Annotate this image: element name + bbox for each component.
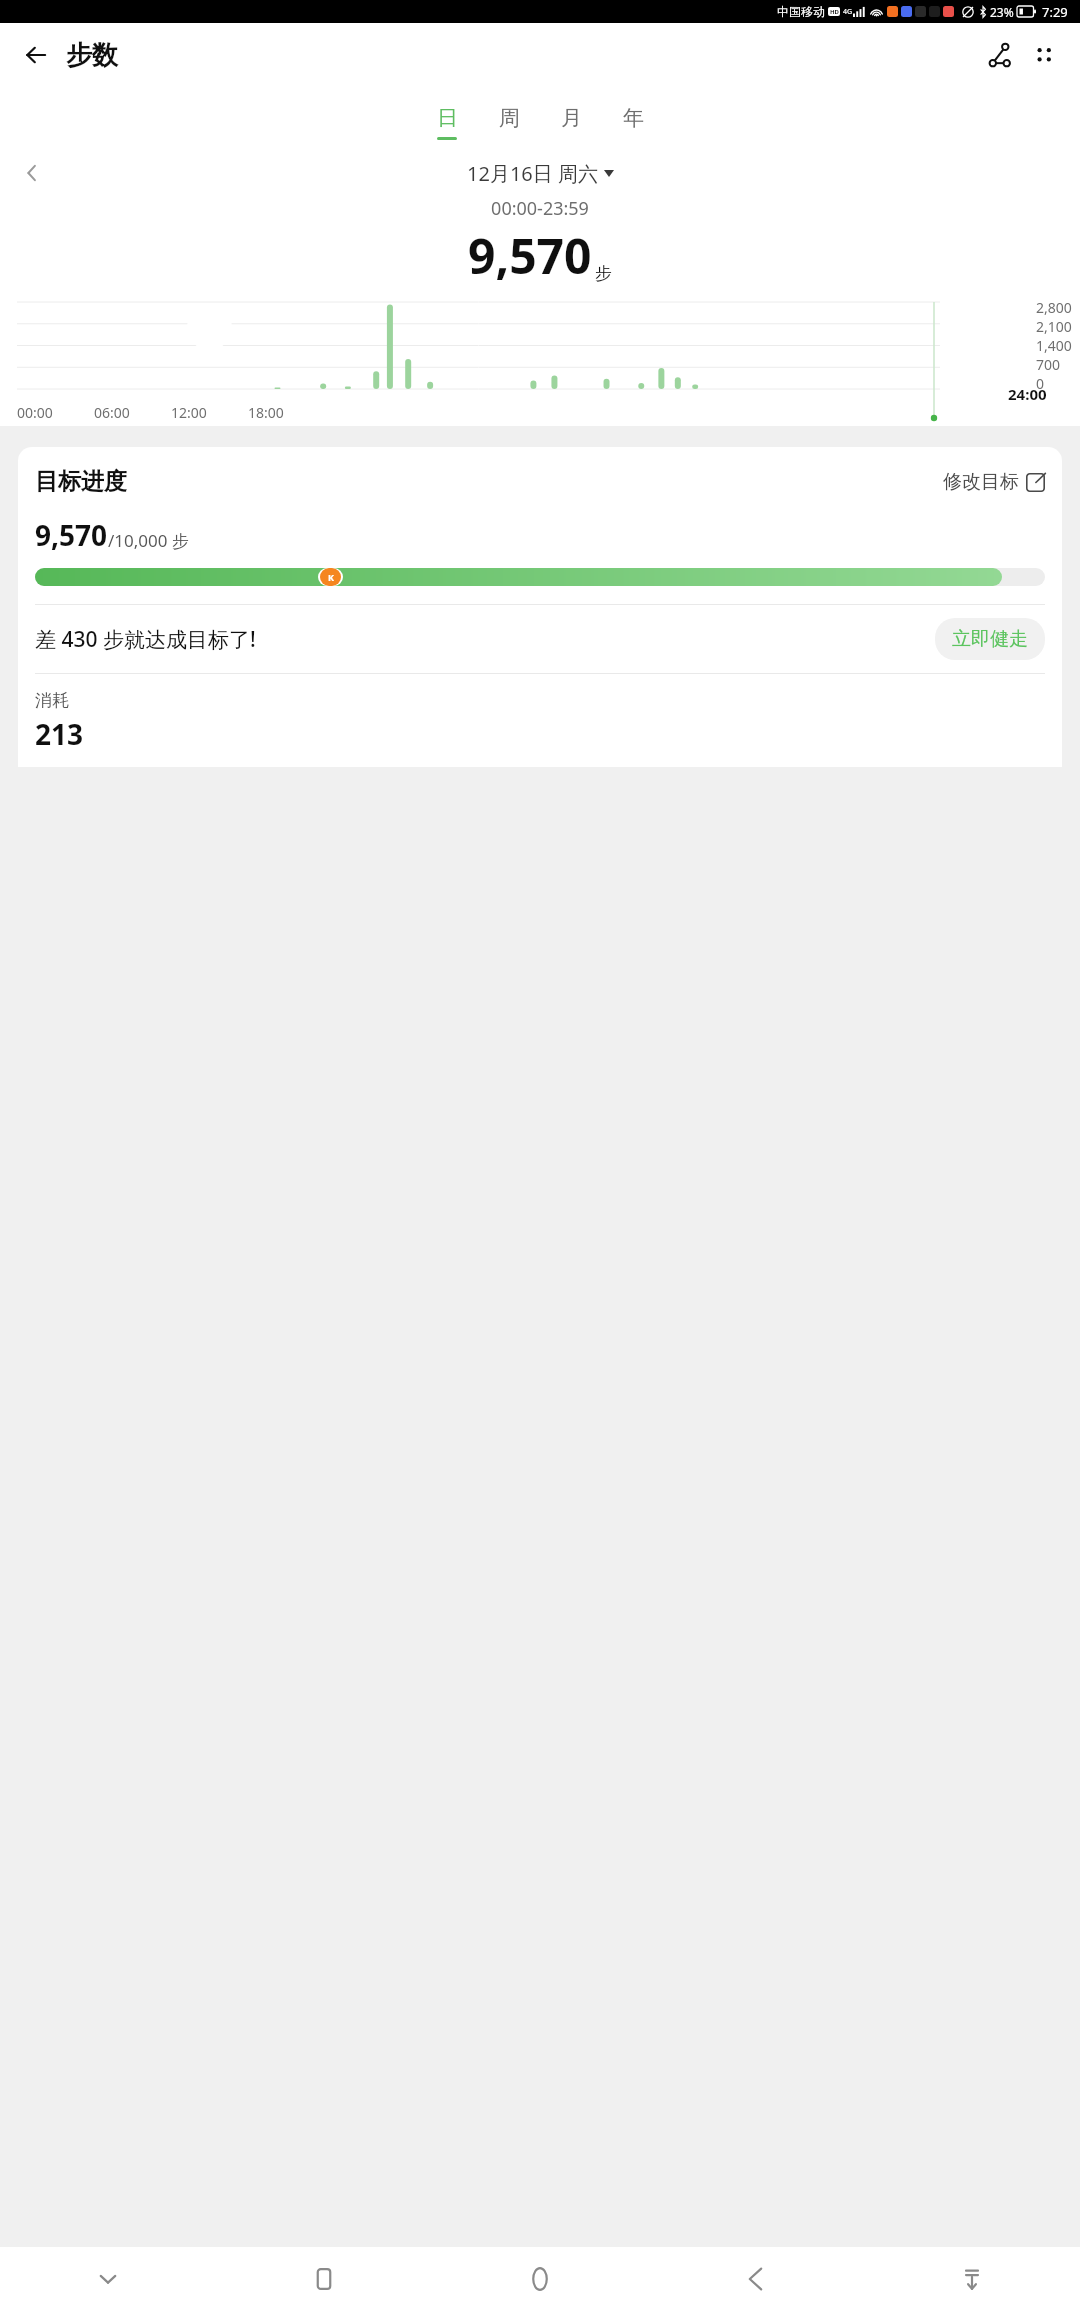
staticText: 24:00 [1008,384,1047,404]
staticText: 12月16日 周六 [467,160,598,187]
staticText: 差 430 步就达成目标了! [35,625,256,654]
button[interactable]: Scroll down [864,2247,1080,2310]
staticText: 9,570 [468,223,592,288]
button[interactable]: Recents [216,2247,432,2310]
staticText: HD [830,8,839,16]
button[interactable]: 年 [617,105,649,140]
staticText: 9,570 [35,516,108,554]
staticText: 步数 [66,39,118,72]
staticText: 213 [35,715,84,753]
staticText: 中国移动 [777,4,825,19]
staticText: 2,800 [1036,298,1072,317]
staticText: 0 [1036,374,1045,389]
staticText: 日 [437,105,458,131]
staticText: 消耗 [35,690,69,711]
button[interactable]: 日 [431,105,463,140]
staticText: 00:00 [17,403,53,422]
button[interactable]: Share [978,33,1022,77]
staticText: 23% [990,4,1014,20]
button[interactable]: 12月16日 周六 [467,160,614,187]
staticText: 周 [499,105,520,131]
staticText: 06:00 [94,403,130,422]
button[interactable]: Back [14,33,58,77]
staticText: /10,000 步 [108,529,189,552]
staticText: 月 [561,105,582,131]
staticText: 1,400 [1036,336,1072,355]
button[interactable]: Home [432,2247,648,2310]
button[interactable]: Back [648,2247,864,2310]
staticText: 修改目标 [943,470,1019,494]
staticText: 700 [1036,355,1061,374]
staticText: 18:00 [248,403,284,422]
button[interactable]: 月 [555,105,587,140]
button[interactable]: 修改目标 [943,470,1045,494]
staticText: 00:00-23:59 [0,196,1080,221]
button[interactable]: Collapse [0,2247,216,2310]
button[interactable]: 立即健走 [935,618,1045,660]
staticText: K [328,571,334,583]
button[interactable]: Previous day [10,156,54,190]
staticText: 2,100 [1036,317,1072,336]
staticText: 目标进度 [35,467,127,496]
staticText: 12:00 [171,403,207,422]
button[interactable]: More options [1022,33,1066,77]
staticText: 4G [843,7,853,17]
staticText: 年 [623,105,644,131]
button[interactable]: 周 [493,105,525,140]
staticText: 7:29 [1042,3,1068,21]
staticText: 立即健走 [952,627,1028,651]
staticText: 步 [595,263,612,284]
